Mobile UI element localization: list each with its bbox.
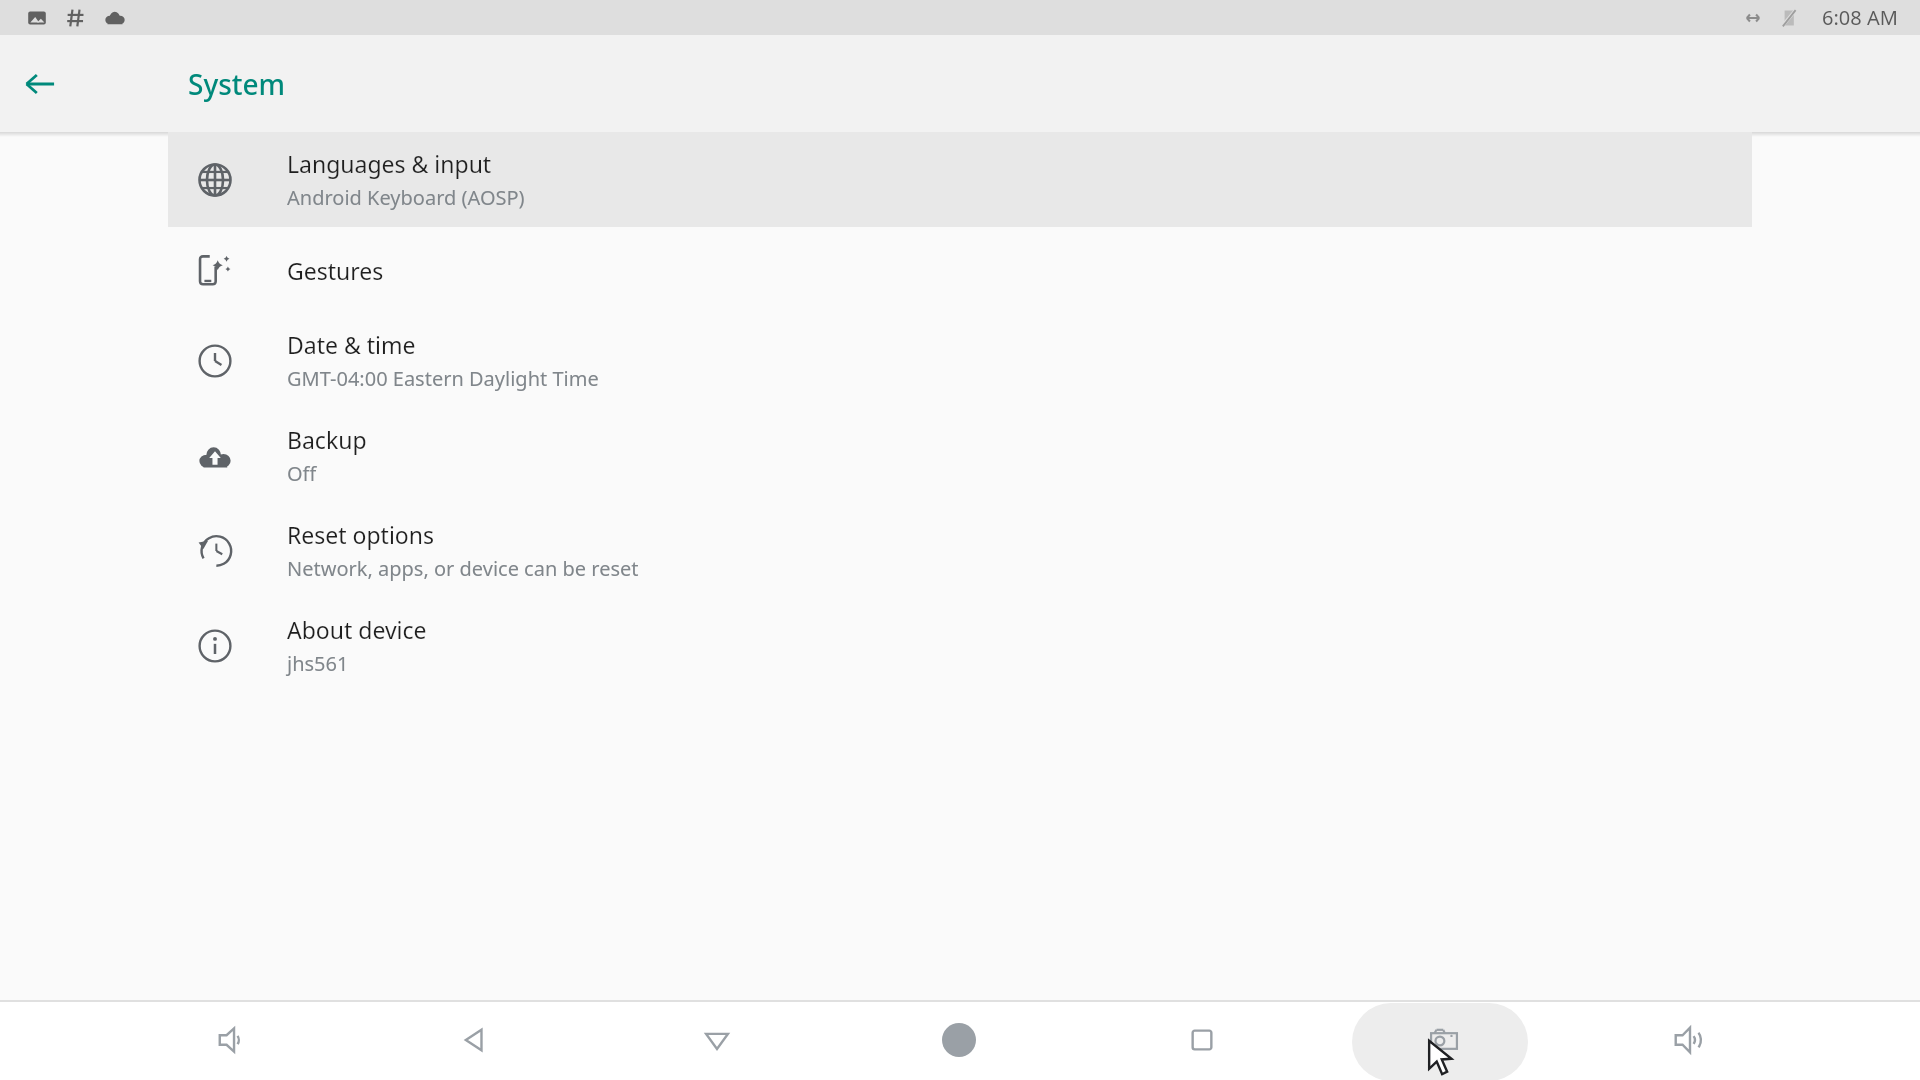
staticText: System	[188, 65, 286, 103]
staticText: Languages & input	[287, 148, 492, 179]
staticText: 6:08 AM	[1822, 4, 1898, 31]
button[interactable]: Back	[12, 56, 68, 112]
button[interactable]: Backup	[0, 408, 1920, 503]
staticText: Network, apps, or device can be reset	[287, 555, 639, 582]
staticText: Gestures	[287, 255, 384, 286]
staticText: jhs561	[287, 650, 349, 677]
staticText: Android Keyboard (AOSP)	[287, 184, 525, 211]
button[interactable]: Reset options	[0, 503, 1920, 598]
staticText: Backup	[287, 424, 367, 455]
staticText: Off	[287, 460, 317, 487]
button[interactable]: Screenshot	[1400, 1000, 1488, 1080]
button[interactable]: Hide keyboard	[673, 1000, 761, 1080]
button[interactable]: About device	[0, 598, 1920, 693]
button[interactable]: Back	[430, 1000, 518, 1080]
button[interactable]: Volume down	[188, 1000, 276, 1080]
staticText: Reset options	[287, 519, 434, 550]
button[interactable]: Date & time	[0, 313, 1920, 408]
staticText: About device	[287, 614, 427, 645]
button[interactable]: Gestures	[0, 227, 1920, 313]
button[interactable]: Volume up	[1646, 1000, 1734, 1080]
staticText: Date & time	[287, 329, 416, 360]
staticText: GMT-04:00 Eastern Daylight Time	[287, 365, 599, 392]
button[interactable]: Recents	[1158, 1000, 1246, 1080]
button[interactable]: Languages & input	[0, 132, 1920, 227]
button[interactable]: Home	[915, 1000, 1003, 1080]
